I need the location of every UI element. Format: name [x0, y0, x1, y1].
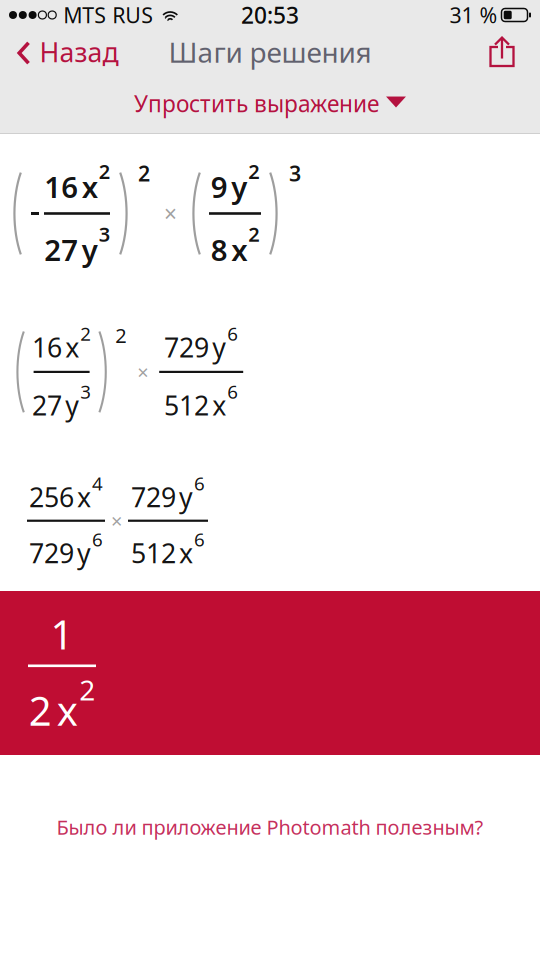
staticText: ×	[137, 359, 148, 385]
staticText: y	[179, 479, 193, 515]
button[interactable]: Было ли приложение Photomath полезным?	[0, 801, 540, 853]
staticText: 2	[80, 321, 91, 346]
staticText: 27	[32, 387, 62, 423]
button[interactable]: Упростить выражение	[0, 80, 540, 133]
staticText: 31 %	[449, 1, 497, 29]
staticText: 4	[92, 471, 103, 496]
staticText: y	[82, 230, 98, 269]
staticText: x	[231, 230, 247, 269]
staticText: 729	[29, 535, 74, 571]
staticText: Назад	[39, 34, 118, 70]
staticText: y	[212, 329, 226, 365]
staticText: 16	[44, 167, 78, 206]
staticText: Было ли приложение Photomath полезным?	[56, 814, 483, 840]
staticText: 6	[227, 379, 238, 404]
button[interactable]: Назад	[0, 30, 132, 80]
staticText: 2	[248, 158, 259, 185]
staticText: 2	[99, 158, 110, 185]
staticText: x	[82, 167, 98, 206]
staticText: 256	[29, 479, 74, 515]
staticText: 729	[131, 479, 176, 515]
staticText: 3	[289, 159, 301, 187]
staticText: y	[231, 167, 247, 206]
staticText: 2	[79, 671, 95, 708]
staticText: 729	[164, 329, 209, 365]
staticText: x	[57, 684, 78, 737]
staticText: MTS RUS	[63, 1, 153, 29]
staticText: 512	[131, 535, 176, 571]
staticText: 9	[211, 167, 228, 206]
staticText: Шаги решения	[168, 33, 371, 71]
button[interactable]: Поделиться	[469, 30, 540, 80]
staticText: 6	[194, 527, 205, 552]
staticText: 2	[248, 221, 259, 247]
staticText: y	[65, 387, 79, 423]
staticText: 1	[50, 607, 73, 660]
staticText: 3	[80, 379, 91, 404]
staticText: ×	[111, 507, 122, 534]
staticText: ×	[164, 198, 177, 228]
staticText: 6	[194, 471, 205, 496]
staticText: Упростить выражение	[134, 88, 379, 118]
staticText: 512	[164, 387, 209, 423]
staticText: x	[212, 387, 226, 423]
staticText: 3	[99, 221, 110, 247]
staticText: 2	[138, 159, 150, 187]
staticText: 6	[92, 527, 103, 552]
staticText: 6	[227, 321, 238, 346]
staticText: x	[77, 479, 91, 515]
staticText: 27	[44, 230, 78, 269]
staticText: 2	[29, 684, 52, 737]
staticText: 20:53	[241, 0, 299, 30]
staticText: 16	[32, 329, 62, 365]
staticText: 2	[115, 322, 126, 349]
staticText: y	[77, 535, 91, 571]
staticText: x	[179, 535, 193, 571]
staticText: 8	[211, 230, 228, 269]
staticText: x	[65, 329, 79, 365]
